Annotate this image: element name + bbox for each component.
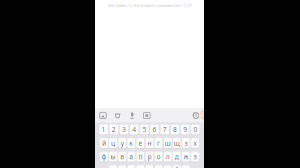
button[interactable]: щ	[173, 138, 181, 149]
button[interactable]: у	[118, 138, 126, 149]
staticText: н	[147, 139, 151, 148]
staticText: у	[121, 139, 124, 148]
button[interactable]: е	[136, 138, 144, 149]
staticText: ф	[101, 152, 106, 161]
staticText: 4	[132, 125, 136, 134]
button[interactable]: 0	[191, 124, 200, 135]
staticText: ш	[165, 139, 171, 148]
button[interactable]: 5	[140, 124, 149, 135]
staticText: ж	[183, 152, 188, 161]
button[interactable]: г	[155, 138, 163, 149]
button[interactable]: ф	[100, 151, 108, 162]
staticText: э	[193, 152, 196, 161]
button[interactable]: б	[173, 165, 181, 168]
staticText: 7	[163, 125, 167, 134]
button[interactable]: ч	[118, 165, 126, 168]
staticText: 1	[102, 125, 106, 134]
button[interactable]: 9	[181, 124, 190, 135]
staticText: 6	[153, 125, 157, 134]
button[interactable]: в	[118, 151, 126, 162]
button[interactable]: ы	[109, 151, 117, 162]
button[interactable]: ю	[182, 165, 190, 168]
button[interactable]: а	[127, 151, 135, 162]
button[interactable]: э	[191, 151, 199, 162]
staticText: 2	[112, 125, 116, 134]
button[interactable]: н	[145, 138, 153, 149]
staticText: 9	[183, 125, 187, 134]
button[interactable]: Keyboard settings	[191, 110, 201, 120]
staticText: в	[120, 152, 124, 161]
staticText: ц	[111, 139, 115, 148]
button[interactable]: 1	[99, 124, 108, 135]
button[interactable]: ш	[164, 138, 172, 149]
staticText: о	[157, 152, 161, 161]
staticText: щ	[174, 139, 180, 148]
staticText: б	[175, 166, 179, 168]
staticText: 8	[173, 125, 177, 134]
staticText: ы	[111, 152, 116, 161]
button[interactable]: к	[127, 138, 135, 149]
staticText: 5	[142, 125, 146, 134]
button[interactable]: ц	[109, 138, 117, 149]
button[interactable]: 6	[150, 124, 159, 135]
button[interactable]: м	[136, 165, 144, 168]
button[interactable]: 7	[160, 124, 169, 135]
button[interactable]: Voice input	[127, 110, 137, 120]
staticText: Настройки > СЭВ и память упаковка tea > …	[107, 3, 191, 8]
button[interactable]: п	[136, 151, 144, 162]
button[interactable]: я	[109, 165, 117, 168]
staticText: х	[193, 139, 196, 148]
button[interactable]: т	[155, 165, 163, 168]
staticText: 0	[193, 125, 197, 134]
staticText: л	[166, 152, 170, 161]
staticText: д	[175, 152, 179, 161]
button[interactable]: Stickers	[113, 110, 123, 120]
button[interactable]: л	[164, 151, 172, 162]
button[interactable]: с	[127, 165, 135, 168]
button[interactable]: й	[100, 138, 108, 149]
staticText: р	[147, 152, 151, 161]
staticText: й	[102, 139, 106, 148]
button[interactable]: ь	[164, 165, 172, 168]
button[interactable]: ж	[182, 151, 190, 162]
button[interactable]: 3	[120, 124, 128, 135]
staticText: а	[129, 152, 133, 161]
button[interactable]: и	[145, 165, 153, 168]
staticText: 3	[122, 125, 126, 134]
staticText: к	[129, 139, 133, 148]
button[interactable]: 4	[130, 124, 138, 135]
button[interactable]: 2	[109, 124, 118, 135]
button[interactable]: д	[173, 151, 181, 162]
staticText: п	[138, 152, 142, 161]
button[interactable]: Photos	[98, 110, 108, 120]
button[interactable]: о	[155, 151, 163, 162]
staticText: з	[184, 139, 187, 148]
button[interactable]: х	[191, 138, 199, 149]
staticText: г	[157, 139, 160, 148]
button[interactable]: р	[145, 151, 153, 162]
button[interactable]: Clipboard	[142, 110, 152, 120]
button[interactable]: 8	[171, 124, 179, 135]
button[interactable]: з	[182, 138, 190, 149]
staticText: е	[138, 139, 142, 148]
